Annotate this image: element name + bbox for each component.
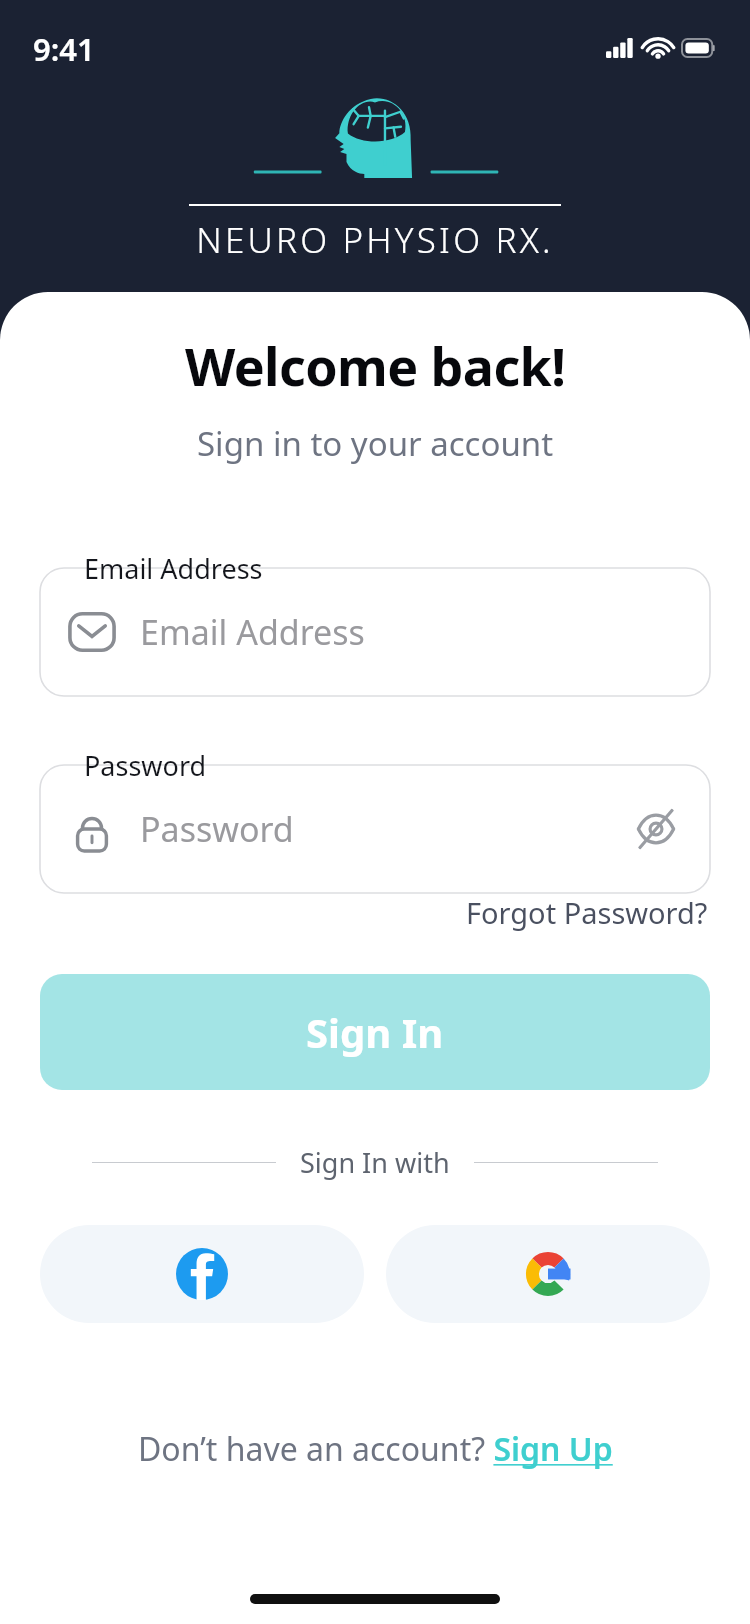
staticText: 9:41 (33, 28, 95, 70)
staticText: Password (140, 806, 630, 852)
staticText: Password (84, 747, 207, 784)
staticText: Sign in to your account (197, 421, 554, 466)
button[interactable]: Sign in with Google (386, 1225, 710, 1323)
staticText: Welcome back! (185, 330, 566, 401)
staticText: Sign In (306, 1005, 444, 1059)
staticText: Sign In with (300, 1144, 450, 1181)
button[interactable]: Forgot Password? (464, 889, 710, 936)
staticText: NEURO PHYSIO RX. (196, 216, 554, 264)
button[interactable]: Password (40, 765, 710, 893)
staticText: Email Address (84, 550, 263, 587)
button[interactable]: Email Address (40, 568, 710, 696)
button[interactable]: Don’t have an account? Sign Up (132, 1421, 619, 1477)
staticText: Email Address (140, 609, 682, 655)
staticText: Forgot Password? (466, 893, 708, 932)
button[interactable]: Show password (630, 803, 682, 855)
staticText: Don’t have an account? Sign Up (138, 1427, 613, 1471)
button[interactable]: Sign in with Facebook (40, 1225, 364, 1323)
button[interactable]: Sign In (40, 974, 710, 1090)
